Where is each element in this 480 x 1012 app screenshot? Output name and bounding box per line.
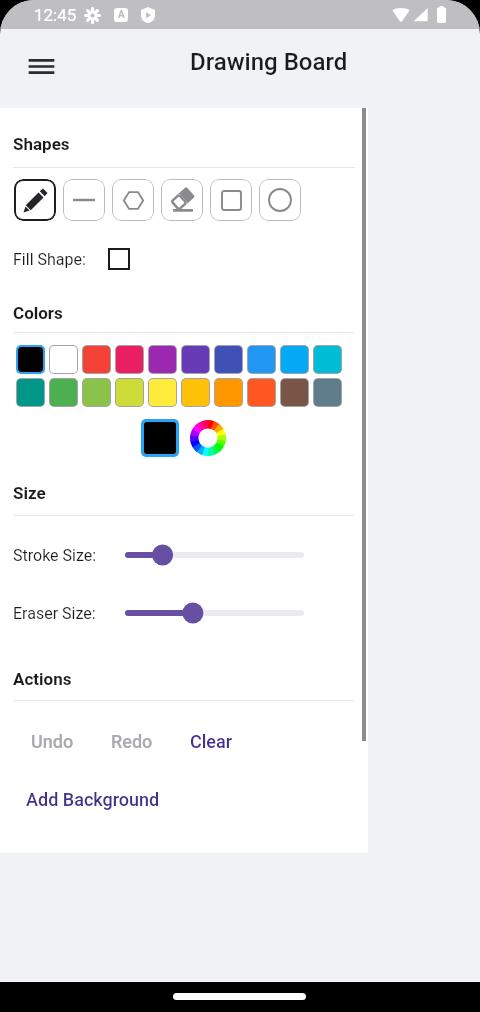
button[interactable]: Polygon tool bbox=[112, 179, 154, 221]
button[interactable]: Colour swatch bbox=[50, 346, 77, 373]
button[interactable]: Circle tool bbox=[259, 179, 301, 221]
button[interactable]: Colour swatch bbox=[83, 379, 110, 406]
staticText: Undo bbox=[31, 731, 74, 752]
button[interactable]: Colour swatch bbox=[116, 379, 143, 406]
button[interactable]: Pencil tool bbox=[14, 179, 56, 221]
button[interactable]: Eraser tool bbox=[161, 179, 203, 221]
button[interactable]: Colour swatch bbox=[215, 346, 242, 373]
button[interactable]: Colour swatch bbox=[314, 379, 341, 406]
button[interactable]: Current colour bbox=[144, 422, 176, 454]
button[interactable]: Add Background bbox=[14, 781, 172, 818]
staticText: A bbox=[118, 9, 125, 21]
button[interactable]: Redo bbox=[99, 723, 165, 760]
button[interactable]: Colour swatch bbox=[83, 346, 110, 373]
button[interactable]: Stroke Size: bbox=[125, 543, 304, 567]
button[interactable]: Colour swatch bbox=[281, 346, 308, 373]
staticText: Add Background bbox=[26, 789, 160, 810]
staticText: Shapes bbox=[13, 134, 70, 154]
button[interactable]: Fill shape checkbox bbox=[108, 248, 130, 270]
button[interactable]: Colour swatch bbox=[18, 347, 43, 372]
staticText: Colors bbox=[13, 303, 63, 323]
button[interactable]: Open navigation menu bbox=[18, 43, 64, 89]
button[interactable]: Colour swatch bbox=[215, 379, 242, 406]
staticText: Fill Shape: bbox=[13, 250, 86, 269]
staticText: Stroke Size: bbox=[13, 546, 97, 565]
staticText: Redo bbox=[111, 731, 153, 752]
button[interactable]: Rectangle tool bbox=[210, 179, 252, 221]
button[interactable]: Custom colour picker bbox=[190, 420, 226, 456]
button[interactable]: Eraser Size: bbox=[125, 601, 304, 625]
staticText: Actions bbox=[13, 669, 72, 689]
staticText: 12:45 bbox=[34, 5, 77, 25]
button[interactable]: Colour swatch bbox=[149, 346, 176, 373]
button[interactable]: Colour swatch bbox=[149, 379, 176, 406]
button[interactable]: Colour swatch bbox=[182, 346, 209, 373]
button[interactable]: Colour swatch bbox=[281, 379, 308, 406]
staticText: Clear bbox=[190, 731, 233, 752]
button[interactable]: Colour swatch bbox=[248, 346, 275, 373]
staticText: Size bbox=[13, 483, 46, 503]
staticText: Drawing Board bbox=[190, 48, 348, 76]
button[interactable]: Clear bbox=[178, 723, 245, 760]
button[interactable]: Line tool bbox=[63, 179, 105, 221]
button[interactable]: Colour swatch bbox=[50, 379, 77, 406]
staticText: Eraser Size: bbox=[13, 604, 96, 623]
button[interactable]: Colour swatch bbox=[314, 346, 341, 373]
button[interactable]: Colour swatch bbox=[182, 379, 209, 406]
button[interactable]: Colour swatch bbox=[248, 379, 275, 406]
button[interactable]: Colour swatch bbox=[17, 379, 44, 406]
button[interactable]: Colour swatch bbox=[116, 346, 143, 373]
button[interactable]: Undo bbox=[19, 723, 86, 760]
